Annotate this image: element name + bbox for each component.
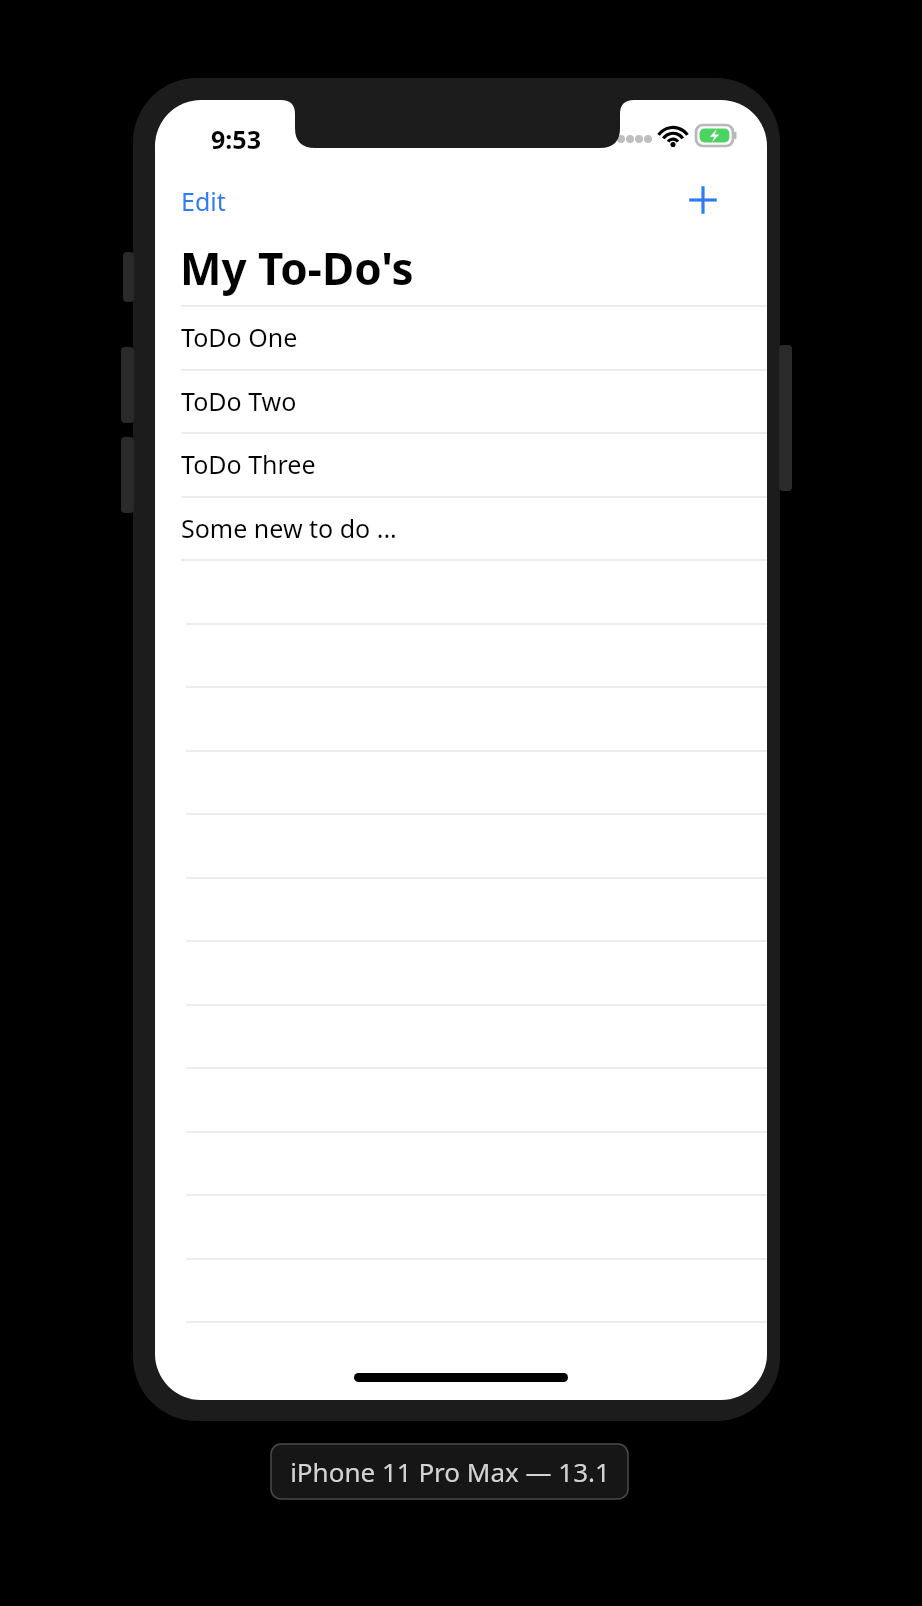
button[interactable]: ToDo Three [155,432,767,496]
staticText: 9:53 [211,122,261,156]
button[interactable]: iPhone 11 Pro Max — 13.1 [271,1444,628,1499]
staticText: ToDo One [181,320,298,354]
button[interactable]: Edit [173,176,234,226]
staticText: iPhone 11 Pro Max — 13.1 [290,1454,610,1489]
button[interactable]: Add to-do [675,172,731,228]
button[interactable]: Some new to do ... [155,496,767,560]
button[interactable]: ToDo One [155,305,767,369]
staticText: ToDo Three [181,447,316,481]
staticText: Edit [181,184,226,218]
staticText: ToDo Two [181,384,297,418]
staticText: Some new to do ... [181,511,397,545]
button[interactable]: ToDo Two [155,369,767,433]
staticText: My To-Do's [180,238,414,298]
